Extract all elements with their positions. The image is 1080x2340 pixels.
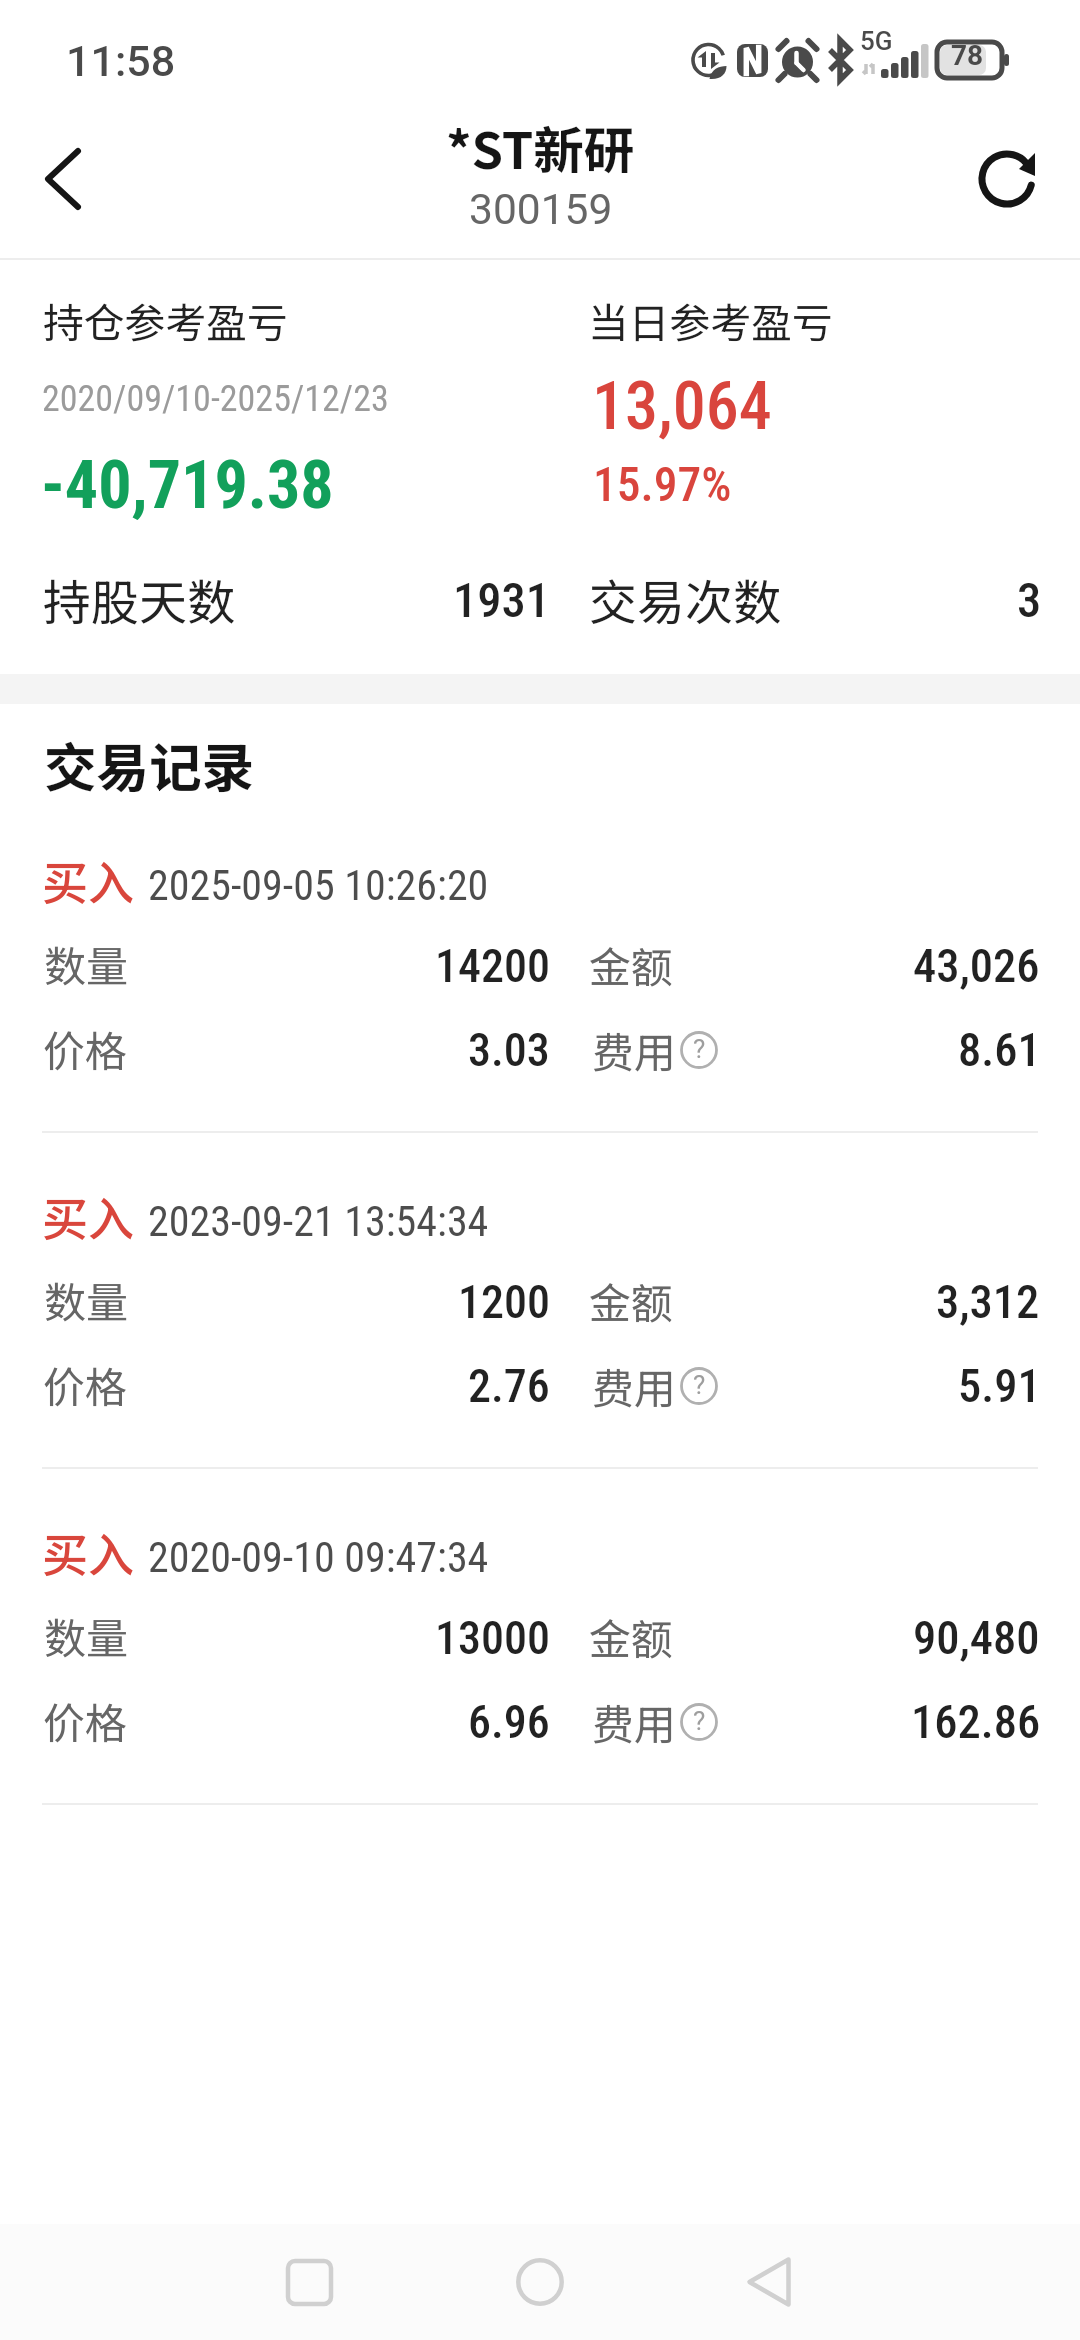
button[interactable]: Refresh — [934, 100, 1080, 258]
staticText: 价格 — [43, 1690, 128, 1751]
staticText: 5.91 — [958, 1359, 1041, 1413]
staticText: 78 — [951, 39, 984, 72]
staticText: 13,064 — [592, 368, 772, 445]
staticText: 14200 — [435, 939, 550, 993]
staticText: 1200 — [458, 1275, 550, 1329]
staticText: ? — [693, 1034, 706, 1064]
staticText: 数量 — [44, 1269, 129, 1330]
button[interactable]: 买入 — [0, 843, 1080, 1093]
staticText: 2025-09-05 10:26:20 — [148, 861, 489, 910]
staticText: 13000 — [435, 1611, 550, 1665]
button[interactable]: Back — [689, 2202, 849, 2340]
staticText: 43,026 — [913, 939, 1040, 993]
button[interactable]: Back — [0, 100, 120, 258]
staticText: 数量 — [44, 1605, 129, 1666]
staticText: 11:58 — [66, 36, 176, 86]
staticText: 1931 — [453, 572, 550, 629]
staticText: 2020-09-10 09:47:34 — [148, 1533, 489, 1582]
staticText: 金额 — [589, 934, 674, 995]
staticText: 金额 — [589, 1606, 674, 1667]
staticText: -40,719.38 — [41, 447, 334, 524]
staticText: 8.61 — [958, 1023, 1041, 1077]
staticText: 3,312 — [936, 1275, 1040, 1329]
staticText: 买入 — [42, 847, 134, 914]
staticText: ? — [693, 1706, 706, 1736]
staticText: 金额 — [589, 1270, 674, 1331]
staticText: 2.76 — [468, 1359, 550, 1413]
button[interactable]: Home — [460, 2202, 620, 2340]
staticText: 当日参考盈亏 — [588, 291, 833, 350]
staticText: 5G — [860, 26, 893, 56]
staticText: 买入 — [42, 1183, 134, 1250]
button[interactable]: 买入 — [0, 1515, 1080, 1765]
staticText: 2020/09/10-2025/12/23 — [42, 378, 389, 420]
staticText: 持仓参考盈亏 — [43, 291, 288, 350]
staticText: 交易记录 — [44, 726, 255, 802]
button[interactable]: 买入 — [0, 1179, 1080, 1429]
staticText: 费用 — [592, 1691, 677, 1752]
staticText: 162.86 — [911, 1695, 1041, 1749]
staticText: 300159 — [469, 185, 613, 235]
staticText: ? — [693, 1370, 706, 1400]
staticText: 持股天数 — [43, 564, 236, 634]
staticText: 3.03 — [468, 1023, 550, 1077]
staticText: 费用 — [592, 1019, 677, 1080]
staticText: 买入 — [42, 1519, 134, 1586]
staticText: 2023-09-21 13:54:34 — [148, 1197, 489, 1246]
staticText: 费用 — [592, 1355, 677, 1416]
staticText: 数量 — [44, 933, 129, 994]
staticText: 价格 — [43, 1354, 128, 1415]
staticText: 6.96 — [468, 1695, 550, 1749]
staticText: 交易次数 — [589, 564, 782, 634]
staticText: 3 — [1017, 572, 1042, 629]
staticText: 15.97% — [593, 457, 732, 513]
staticText: 价格 — [43, 1018, 128, 1079]
button[interactable]: Recent apps — [229, 2202, 389, 2340]
staticText: 90,480 — [913, 1611, 1040, 1665]
staticText: *ST新研 — [446, 110, 635, 183]
